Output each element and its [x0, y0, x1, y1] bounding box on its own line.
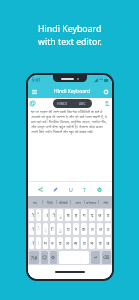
- button[interactable]: व: [57, 237, 63, 249]
- button[interactable]: द: [89, 209, 95, 221]
- staticText: आप: [75, 200, 81, 205]
- button[interactable]: य: [81, 237, 87, 249]
- button[interactable]: क: [81, 223, 87, 235]
- staticText: ल: [66, 240, 70, 246]
- staticText: ड: [107, 212, 110, 218]
- staticText: ज: [98, 212, 102, 218]
- button[interactable]: न: [50, 237, 55, 249]
- staticText: का: [33, 200, 37, 205]
- staticText: स: [74, 240, 78, 246]
- staticText: प: [67, 226, 70, 232]
- button[interactable]: का: [28, 196, 42, 208]
- staticText: ⌫: [103, 255, 110, 260]
- button[interactable]: Copy: [29, 100, 36, 107]
- button[interactable]: स: [73, 237, 79, 249]
- staticText: ट: [107, 226, 110, 232]
- button[interactable]: ह: [73, 209, 79, 221]
- staticText: ह: [75, 212, 78, 218]
- staticText: क: [82, 226, 86, 232]
- staticText: कीबोर्ड: [59, 200, 68, 205]
- staticText: न: [51, 240, 54, 246]
- staticText: ै: [37, 212, 40, 218]
- button[interactable]: ट: [105, 223, 111, 235]
- button[interactable]: त: [89, 223, 95, 235]
- button[interactable]: और: [99, 196, 112, 208]
- button[interactable]: ?!#: [29, 251, 39, 264]
- staticText: र: [75, 226, 77, 232]
- button[interactable]: हिंदी: [43, 196, 56, 208]
- staticText: ॉ: [30, 240, 34, 246]
- button[interactable]: ABC: [72, 99, 92, 108]
- staticText: े: [37, 226, 40, 232]
- staticText: ?!#: [31, 255, 38, 261]
- staticText: ञ: [106, 240, 110, 246]
- button[interactable]: ॉ: [29, 237, 34, 249]
- button[interactable]: आप: [71, 196, 84, 208]
- button[interactable]: ⌫: [102, 251, 111, 264]
- button[interactable]: Clear: [95, 185, 104, 194]
- button[interactable]: भ: [89, 237, 95, 249]
- button[interactable]: धन्यवाद: [85, 196, 98, 208]
- button[interactable]: Edit: [51, 185, 60, 194]
- button[interactable]: ो: [29, 223, 34, 235]
- staticText: और: [103, 200, 109, 205]
- staticText: Hindi Keyboard: [38, 23, 102, 35]
- button[interactable]: ↵: [91, 251, 100, 264]
- staticText: य: [83, 240, 86, 246]
- button[interactable]: T: [80, 185, 89, 194]
- button[interactable]: ब: [65, 209, 71, 221]
- button[interactable]: ी: [50, 209, 55, 221]
- button[interactable]: प: [65, 223, 71, 235]
- button[interactable]: HINDI: [53, 99, 72, 108]
- staticText: ि: [51, 226, 55, 232]
- staticText: Hindi Keyboard: [54, 88, 91, 95]
- button[interactable]: र: [73, 223, 79, 235]
- button[interactable]: ि: [50, 223, 55, 235]
- button[interactable]: ू: [57, 209, 63, 221]
- staticText: द: [91, 212, 94, 218]
- button[interactable]: ☺: [41, 251, 48, 264]
- button[interactable]: Share: [36, 185, 45, 194]
- button[interactable]: ु: [57, 223, 63, 235]
- button[interactable]: ग: [81, 209, 87, 221]
- staticText: ब: [67, 212, 70, 218]
- button[interactable]: कीबोर्ड: [57, 196, 70, 208]
- button[interactable]: U: [66, 185, 75, 194]
- staticText: त: [91, 226, 94, 232]
- staticText: घर पर रहकर की जाने वाली फिटनेस एक्टिविटी…: [31, 109, 110, 134]
- button[interactable]: ⚙: [50, 251, 57, 264]
- button[interactable]: ड: [105, 209, 111, 221]
- button[interactable]: Translate: [104, 100, 111, 107]
- button[interactable]: ल: [65, 237, 71, 249]
- staticText: हिंदी: [47, 200, 53, 205]
- button[interactable]: ञ: [105, 237, 111, 249]
- button[interactable]: म: [43, 237, 48, 249]
- button[interactable]: ज: [97, 209, 103, 221]
- staticText: व: [59, 240, 62, 246]
- staticText: U: [69, 186, 73, 193]
- button[interactable]: े: [36, 223, 41, 235]
- button[interactable]: ं: [36, 237, 41, 249]
- button[interactable]: च: [97, 223, 103, 235]
- staticText: म: [44, 240, 47, 246]
- button[interactable]: ्: [43, 223, 48, 235]
- staticText: ↵: [94, 255, 98, 260]
- button[interactable]: Menu: [30, 87, 39, 96]
- staticText: धन्यवाद: [86, 200, 97, 205]
- button[interactable]: Settings: [101, 87, 110, 96]
- button[interactable]: ौ: [29, 209, 34, 221]
- staticText: ु: [59, 226, 62, 232]
- button[interactable]: ङ: [97, 237, 103, 249]
- button[interactable]: ा: [43, 209, 48, 221]
- staticText: ं: [37, 240, 40, 246]
- staticText: भ: [90, 240, 94, 246]
- staticText: T: [83, 186, 86, 193]
- staticText: ो: [30, 226, 34, 232]
- staticText: ङ: [99, 240, 102, 246]
- staticText: HINDI: [57, 101, 68, 106]
- button[interactable]: ै: [36, 209, 41, 221]
- staticText: ⚙: [51, 255, 56, 260]
- staticText: ू: [59, 212, 62, 218]
- staticText: ौ: [30, 212, 34, 218]
